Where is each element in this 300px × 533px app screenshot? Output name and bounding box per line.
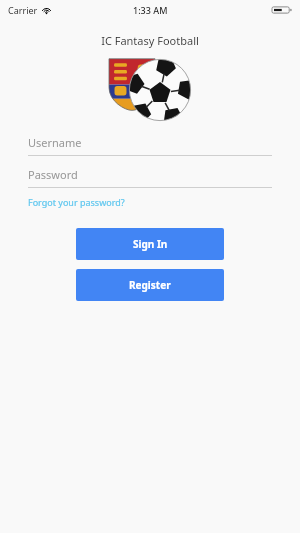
button[interactable]: Password — [0, 165, 300, 188]
button[interactable]: Register — [76, 269, 224, 301]
staticText: Forgot your password? — [28, 196, 125, 208]
staticText: Carrier — [8, 4, 38, 16]
staticText: Sign In — [133, 237, 168, 251]
button[interactable]: Username — [0, 133, 300, 156]
staticText: 1:33 AM — [133, 4, 168, 16]
staticText: Register — [129, 278, 171, 292]
staticText: Username — [28, 135, 82, 150]
button[interactable]: Sign In — [76, 228, 224, 260]
staticText: IC Fantasy Football — [0, 33, 300, 48]
staticText: Password — [28, 167, 78, 182]
button[interactable]: Forgot your password? — [28, 195, 125, 209]
